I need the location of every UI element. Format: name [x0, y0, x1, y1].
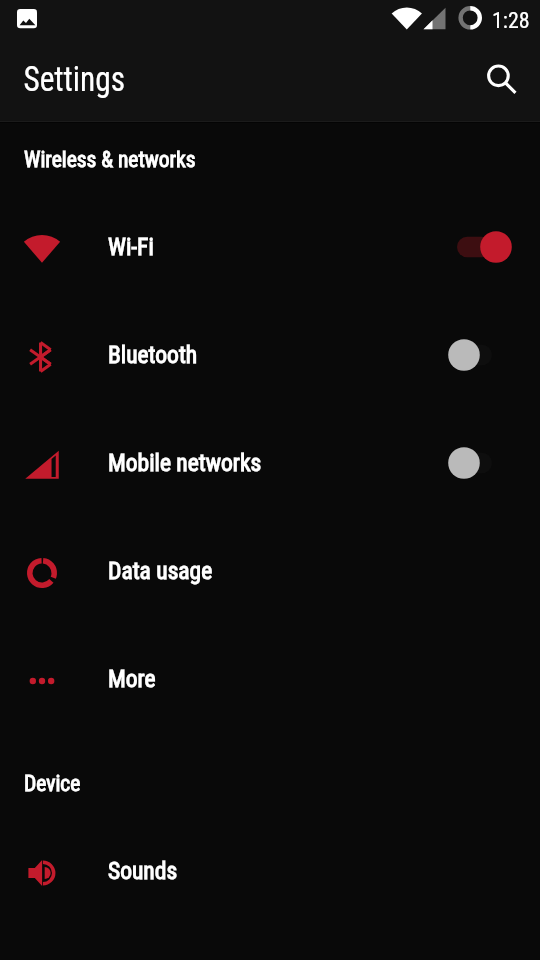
button[interactable]: Mobile networks — [0, 409, 540, 517]
button[interactable]: Turn off — [452, 223, 528, 271]
button[interactable]: Sounds — [0, 817, 540, 925]
staticText: Settings — [23, 59, 125, 100]
button[interactable]: Data usage — [0, 517, 540, 625]
staticText: Data usage — [108, 557, 213, 585]
staticText: Device — [24, 771, 81, 796]
button[interactable]: More — [0, 625, 540, 733]
staticText: Wi-Fi — [108, 233, 154, 261]
staticText: Wireless & networks — [24, 147, 196, 172]
button[interactable]: Turn on — [452, 439, 528, 487]
staticText: Sounds — [108, 857, 178, 885]
staticText: Bluetooth — [108, 341, 198, 369]
button[interactable]: Turn on — [452, 331, 528, 379]
staticText: Mobile networks — [108, 449, 262, 477]
button[interactable]: Bluetooth — [0, 301, 540, 409]
staticText: More — [108, 665, 156, 693]
button[interactable]: Wi-Fi — [0, 193, 540, 301]
button[interactable]: Search — [473, 51, 529, 107]
staticText: 1:28 — [492, 8, 530, 34]
